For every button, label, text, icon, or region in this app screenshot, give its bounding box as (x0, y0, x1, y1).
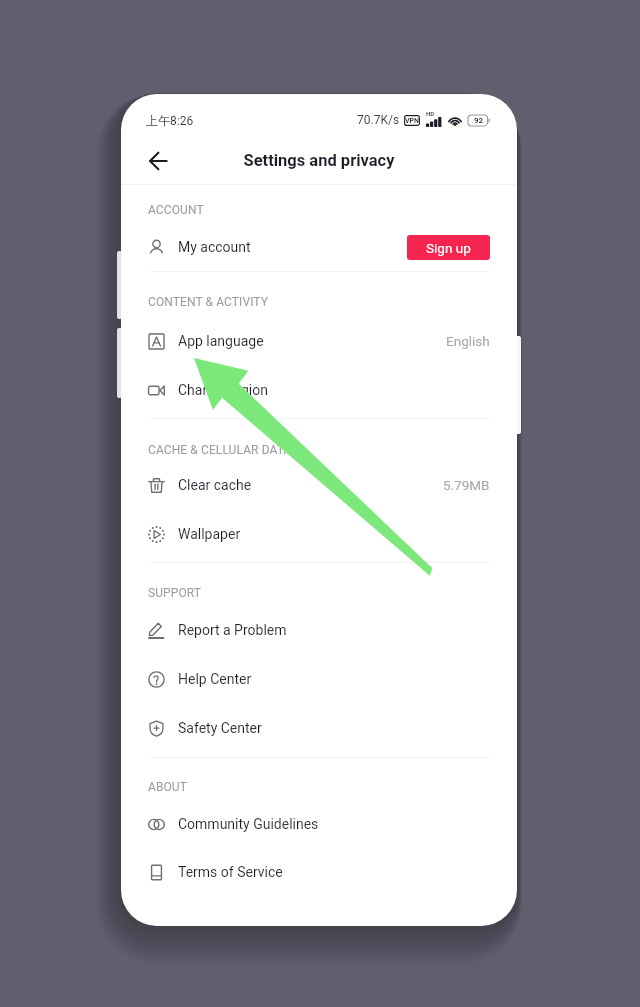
staticText: 92 (474, 116, 484, 125)
staticText: HD (426, 110, 435, 117)
staticText: English (446, 333, 490, 349)
staticText: Report a Problem (178, 622, 287, 638)
button[interactable]: Wallpaper (121, 510, 517, 558)
button[interactable]: Clear cache (121, 461, 517, 509)
staticText: 70.7K/s (357, 113, 400, 127)
staticText: VPN (405, 117, 420, 125)
button[interactable]: Back (137, 140, 178, 181)
staticText: Help Center (178, 671, 252, 687)
staticText: Sign up (426, 240, 471, 256)
button[interactable]: Terms of Service (121, 848, 517, 896)
staticText: CACHE & CELLULAR DATA (148, 443, 292, 457)
staticText: 上午8:26 (146, 113, 194, 128)
staticText: Safety Center (178, 720, 262, 736)
staticText: 5.79MB (443, 477, 490, 493)
staticText: ACCOUNT (148, 203, 204, 217)
staticText: SUPPORT (148, 586, 202, 600)
button[interactable]: Sign up (407, 235, 490, 260)
button[interactable]: My account (121, 223, 517, 271)
button[interactable]: Change region (121, 366, 517, 414)
button[interactable]: Help Center (121, 655, 517, 703)
staticText: Community Guidelines (178, 816, 319, 832)
staticText: ABOUT (148, 780, 188, 794)
staticText: Wallpaper (178, 526, 241, 542)
staticText: Clear cache (178, 477, 252, 493)
button[interactable]: Safety Center (121, 704, 517, 752)
staticText: Change region (178, 382, 268, 398)
staticText: Terms of Service (178, 864, 283, 880)
staticText: Settings and privacy (121, 151, 517, 170)
staticText: My account (178, 239, 251, 255)
button[interactable]: Report a Problem (121, 606, 517, 654)
button[interactable]: Community Guidelines (121, 800, 517, 848)
staticText: App language (178, 333, 264, 349)
button[interactable]: App language (121, 317, 517, 365)
staticText: CONTENT & ACTIVITY (148, 295, 268, 309)
